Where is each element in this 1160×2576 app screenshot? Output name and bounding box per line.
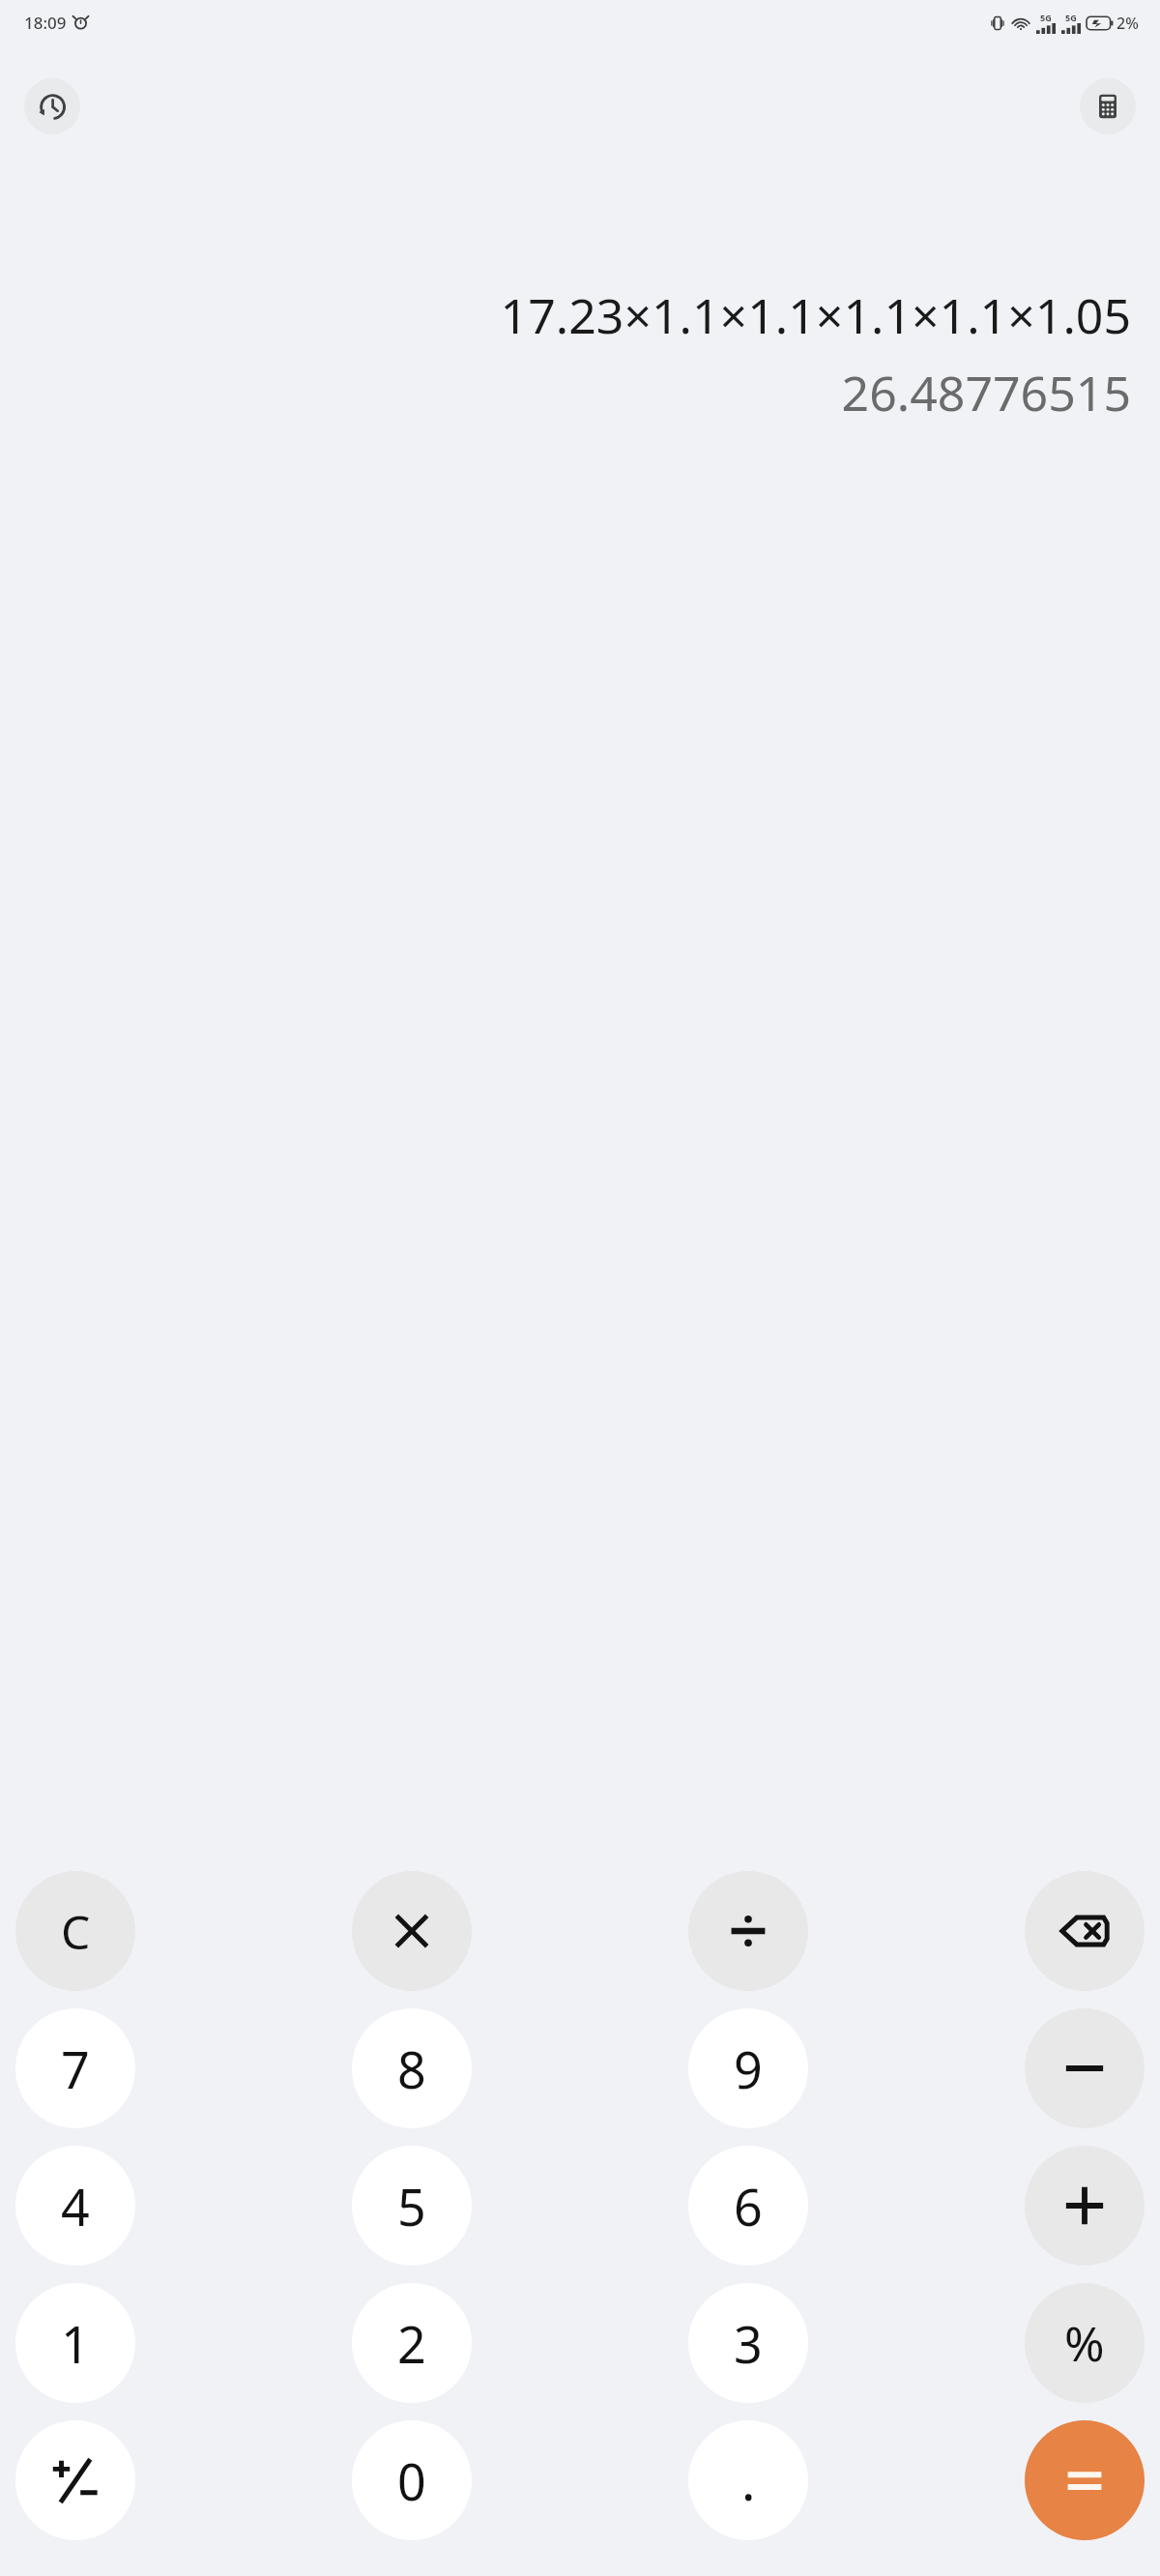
staticText: 8 bbox=[397, 2034, 426, 2103]
button[interactable]: 2 bbox=[352, 2283, 472, 2403]
button[interactable]: 0 bbox=[352, 2420, 472, 2540]
staticText: 9 bbox=[734, 2034, 763, 2103]
staticText: 26.48776515 bbox=[29, 360, 1131, 425]
staticText: 3 bbox=[734, 2309, 763, 2378]
button[interactable]: Multiply bbox=[352, 1871, 472, 1991]
staticText: 17.23×1.1×1.1×1.1×1.1×1.05 bbox=[29, 282, 1131, 348]
button[interactable]: % bbox=[1025, 2283, 1145, 2403]
staticText: 5G bbox=[1065, 12, 1077, 23]
button[interactable]: . bbox=[688, 2420, 808, 2540]
staticText: % bbox=[1064, 2310, 1105, 2376]
button[interactable]: Plus minus sign bbox=[15, 2420, 135, 2540]
button[interactable]: Plus bbox=[1025, 2146, 1145, 2266]
staticText: 2% bbox=[1116, 13, 1139, 34]
staticText: 18:09 bbox=[24, 12, 67, 34]
button[interactable]: 3 bbox=[688, 2283, 808, 2403]
button[interactable]: Divide bbox=[688, 1871, 808, 1991]
button[interactable]: 7 bbox=[15, 2008, 135, 2128]
button[interactable]: 6 bbox=[688, 2146, 808, 2266]
button[interactable]: 8 bbox=[352, 2008, 472, 2128]
staticText: C bbox=[61, 1900, 91, 1963]
button[interactable]: Minus bbox=[1025, 2008, 1145, 2128]
staticText: 5 bbox=[397, 2172, 426, 2240]
button[interactable]: Scientific calculator bbox=[1080, 78, 1136, 134]
button[interactable]: 9 bbox=[688, 2008, 808, 2128]
button[interactable]: C bbox=[15, 1871, 135, 1991]
button[interactable]: 1 bbox=[15, 2283, 135, 2403]
button[interactable]: History bbox=[24, 78, 80, 134]
button[interactable]: Equals bbox=[1025, 2420, 1145, 2540]
staticText: 7 bbox=[61, 2034, 90, 2103]
button[interactable]: 4 bbox=[15, 2146, 135, 2266]
staticText: 2 bbox=[397, 2309, 426, 2378]
staticText: 0 bbox=[397, 2446, 426, 2515]
staticText: 5G bbox=[1040, 12, 1052, 23]
staticText: . bbox=[741, 2444, 756, 2516]
button[interactable]: 5 bbox=[352, 2146, 472, 2266]
button[interactable]: Backspace bbox=[1025, 1871, 1145, 1991]
staticText: 1 bbox=[61, 2309, 90, 2378]
staticText: 6 bbox=[734, 2172, 763, 2240]
staticText: 4 bbox=[61, 2172, 90, 2240]
